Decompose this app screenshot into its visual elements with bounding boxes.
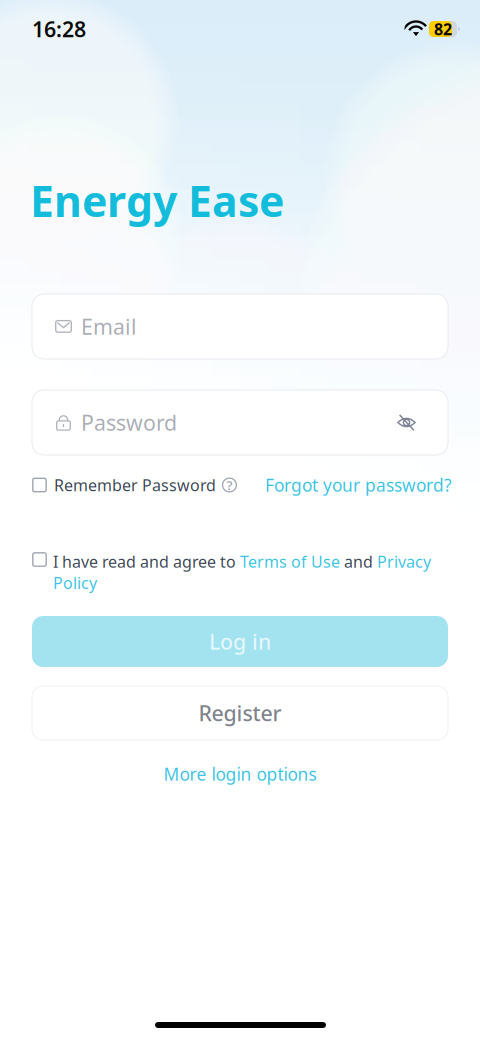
button[interactable]: More login options bbox=[32, 764, 448, 784]
button[interactable]: Password bbox=[32, 390, 448, 455]
staticText: Email bbox=[81, 312, 137, 341]
staticText: More login options bbox=[163, 762, 316, 785]
button[interactable]: Agree to terms bbox=[32, 552, 47, 567]
button[interactable]: Email bbox=[32, 294, 448, 359]
button[interactable]: Register bbox=[32, 686, 448, 740]
staticText: Forgot your password? bbox=[265, 473, 452, 496]
staticText: Register bbox=[198, 699, 281, 727]
staticText: Log in bbox=[209, 627, 271, 656]
staticText: Password bbox=[81, 408, 177, 437]
button[interactable]: Help bbox=[222, 477, 237, 492]
button[interactable]: Log in bbox=[32, 616, 448, 667]
staticText: ? bbox=[226, 476, 232, 494]
button[interactable]: Show password bbox=[397, 413, 416, 432]
button[interactable]: Remember Password bbox=[32, 474, 216, 496]
staticText: I have read and agree to Terms of Use an… bbox=[53, 551, 431, 593]
staticText: 16:28 bbox=[32, 15, 86, 43]
button[interactable]: Forgot your password? bbox=[265, 473, 452, 496]
staticText: Remember Password bbox=[54, 474, 216, 496]
staticText: 82 bbox=[434, 18, 452, 40]
staticText: Energy Ease bbox=[30, 172, 284, 229]
